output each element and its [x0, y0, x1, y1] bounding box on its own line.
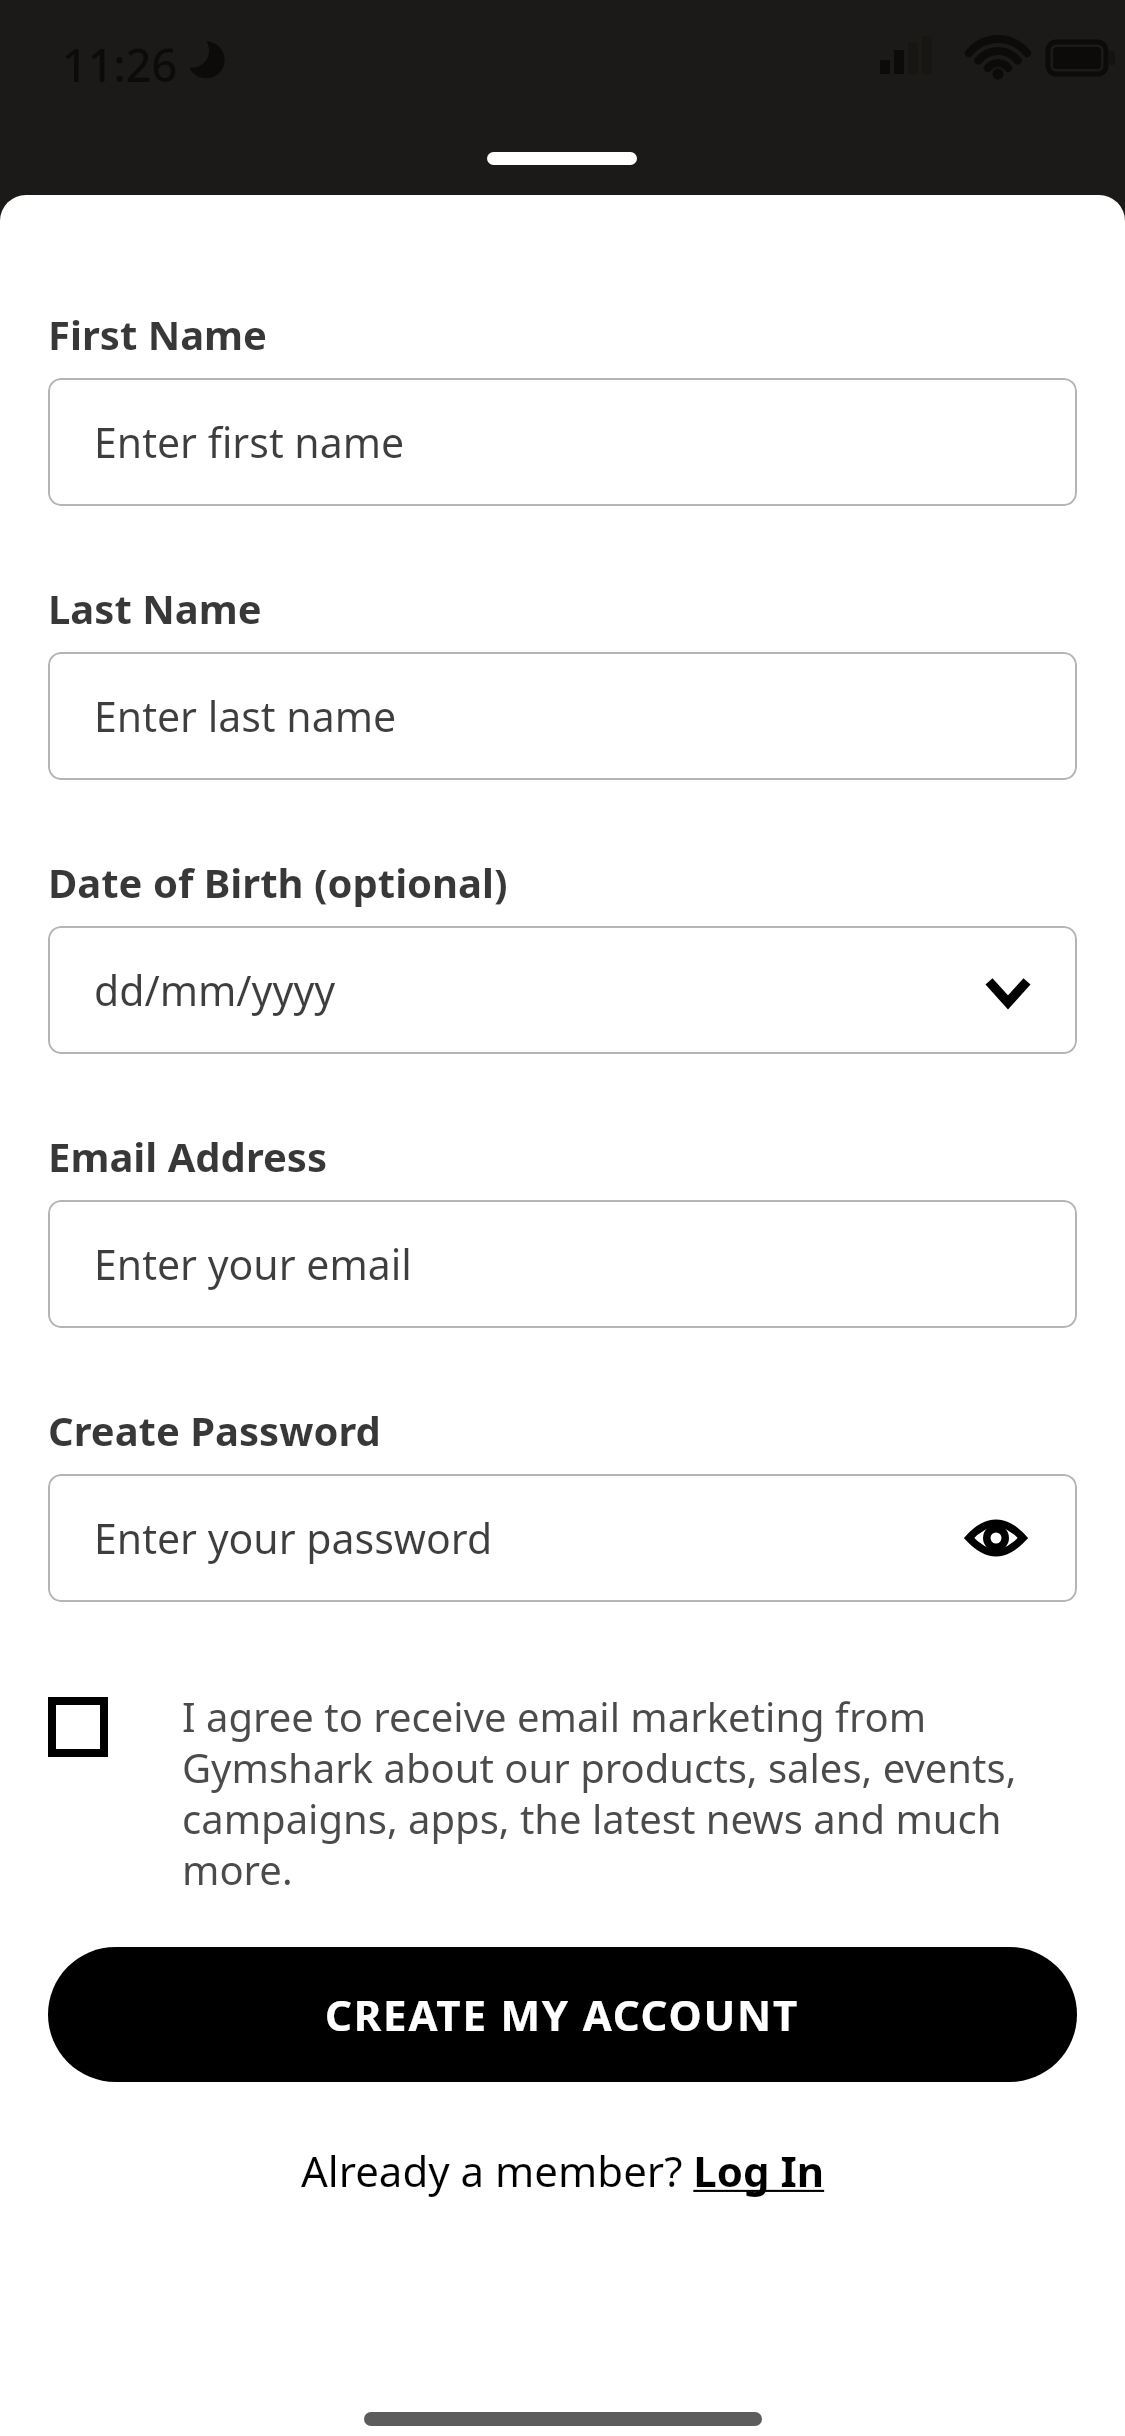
button[interactable]: Enter last name — [48, 652, 1077, 780]
button[interactable]: Enter your email — [48, 1200, 1077, 1328]
staticText: Date of Birth (optional) — [48, 855, 508, 909]
staticText: Last Name — [48, 581, 262, 635]
button[interactable]: Open date picker — [965, 947, 1051, 1033]
staticText: Enter last name — [94, 688, 397, 744]
button[interactable]: CREATE MY ACCOUNT — [48, 1947, 1077, 2082]
staticText: Already a member? Log In — [301, 2142, 825, 2199]
staticText: Enter your email — [94, 1236, 412, 1292]
staticText: CREATE MY ACCOUNT — [325, 1986, 800, 2043]
staticText: Create Password — [48, 1403, 381, 1457]
staticText: I agree to receive email marketing from … — [182, 1689, 1065, 1897]
staticText: Email Address — [48, 1129, 327, 1183]
button[interactable]: Enter your password — [48, 1474, 1077, 1602]
staticText: 11:26 — [62, 34, 178, 95]
staticText: Enter first name — [94, 414, 405, 470]
button[interactable]: Show password — [953, 1495, 1039, 1581]
other: Agree to email marketing — [48, 1697, 108, 1757]
staticText: First Name — [48, 307, 267, 361]
button[interactable]: Already a member? Log In — [301, 2142, 825, 2199]
button[interactable]: dd/mm/yyyy — [48, 926, 1077, 1054]
button[interactable]: Agree to email marketing — [48, 1689, 1065, 1897]
button[interactable]: Enter first name — [48, 378, 1077, 506]
staticText: dd/mm/yyyy — [94, 962, 336, 1018]
staticText: Enter your password — [94, 1510, 493, 1566]
